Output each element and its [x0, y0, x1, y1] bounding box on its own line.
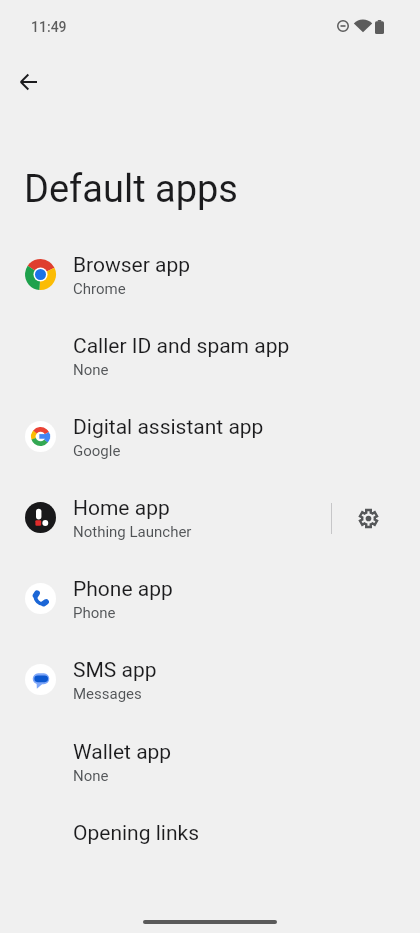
staticText: Phone app [73, 577, 173, 602]
button[interactable]: Opening links [0, 803, 420, 884]
staticText: SMS app [73, 658, 157, 683]
staticText: Nothing Launcher [73, 523, 192, 541]
staticText: Wallet app [73, 740, 172, 765]
staticText: Chrome [73, 280, 126, 298]
staticText: Phone [73, 604, 116, 622]
button[interactable]: Phone app [0, 559, 420, 640]
button[interactable]: Home app settings [346, 496, 391, 541]
staticText: Default apps [24, 167, 238, 212]
button[interactable]: Caller ID and spam app [0, 316, 420, 397]
staticText: Google [73, 442, 121, 460]
staticText: 11:49 [31, 19, 67, 35]
staticText: Opening links [73, 821, 199, 846]
staticText: Messages [73, 685, 142, 703]
staticText: Caller ID and spam app [73, 334, 290, 359]
staticText: None [73, 361, 109, 379]
staticText: Digital assistant app [73, 415, 264, 440]
button[interactable]: Home app [0, 478, 420, 559]
staticText: Home app [73, 496, 170, 521]
button[interactable]: Wallet app [0, 722, 420, 803]
button[interactable]: Digital assistant app [0, 397, 420, 478]
staticText: Browser app [73, 253, 191, 278]
button[interactable]: Back [6, 60, 50, 104]
staticText: None [73, 767, 109, 785]
button[interactable]: Browser app [0, 235, 420, 316]
button[interactable]: SMS app [0, 640, 420, 721]
